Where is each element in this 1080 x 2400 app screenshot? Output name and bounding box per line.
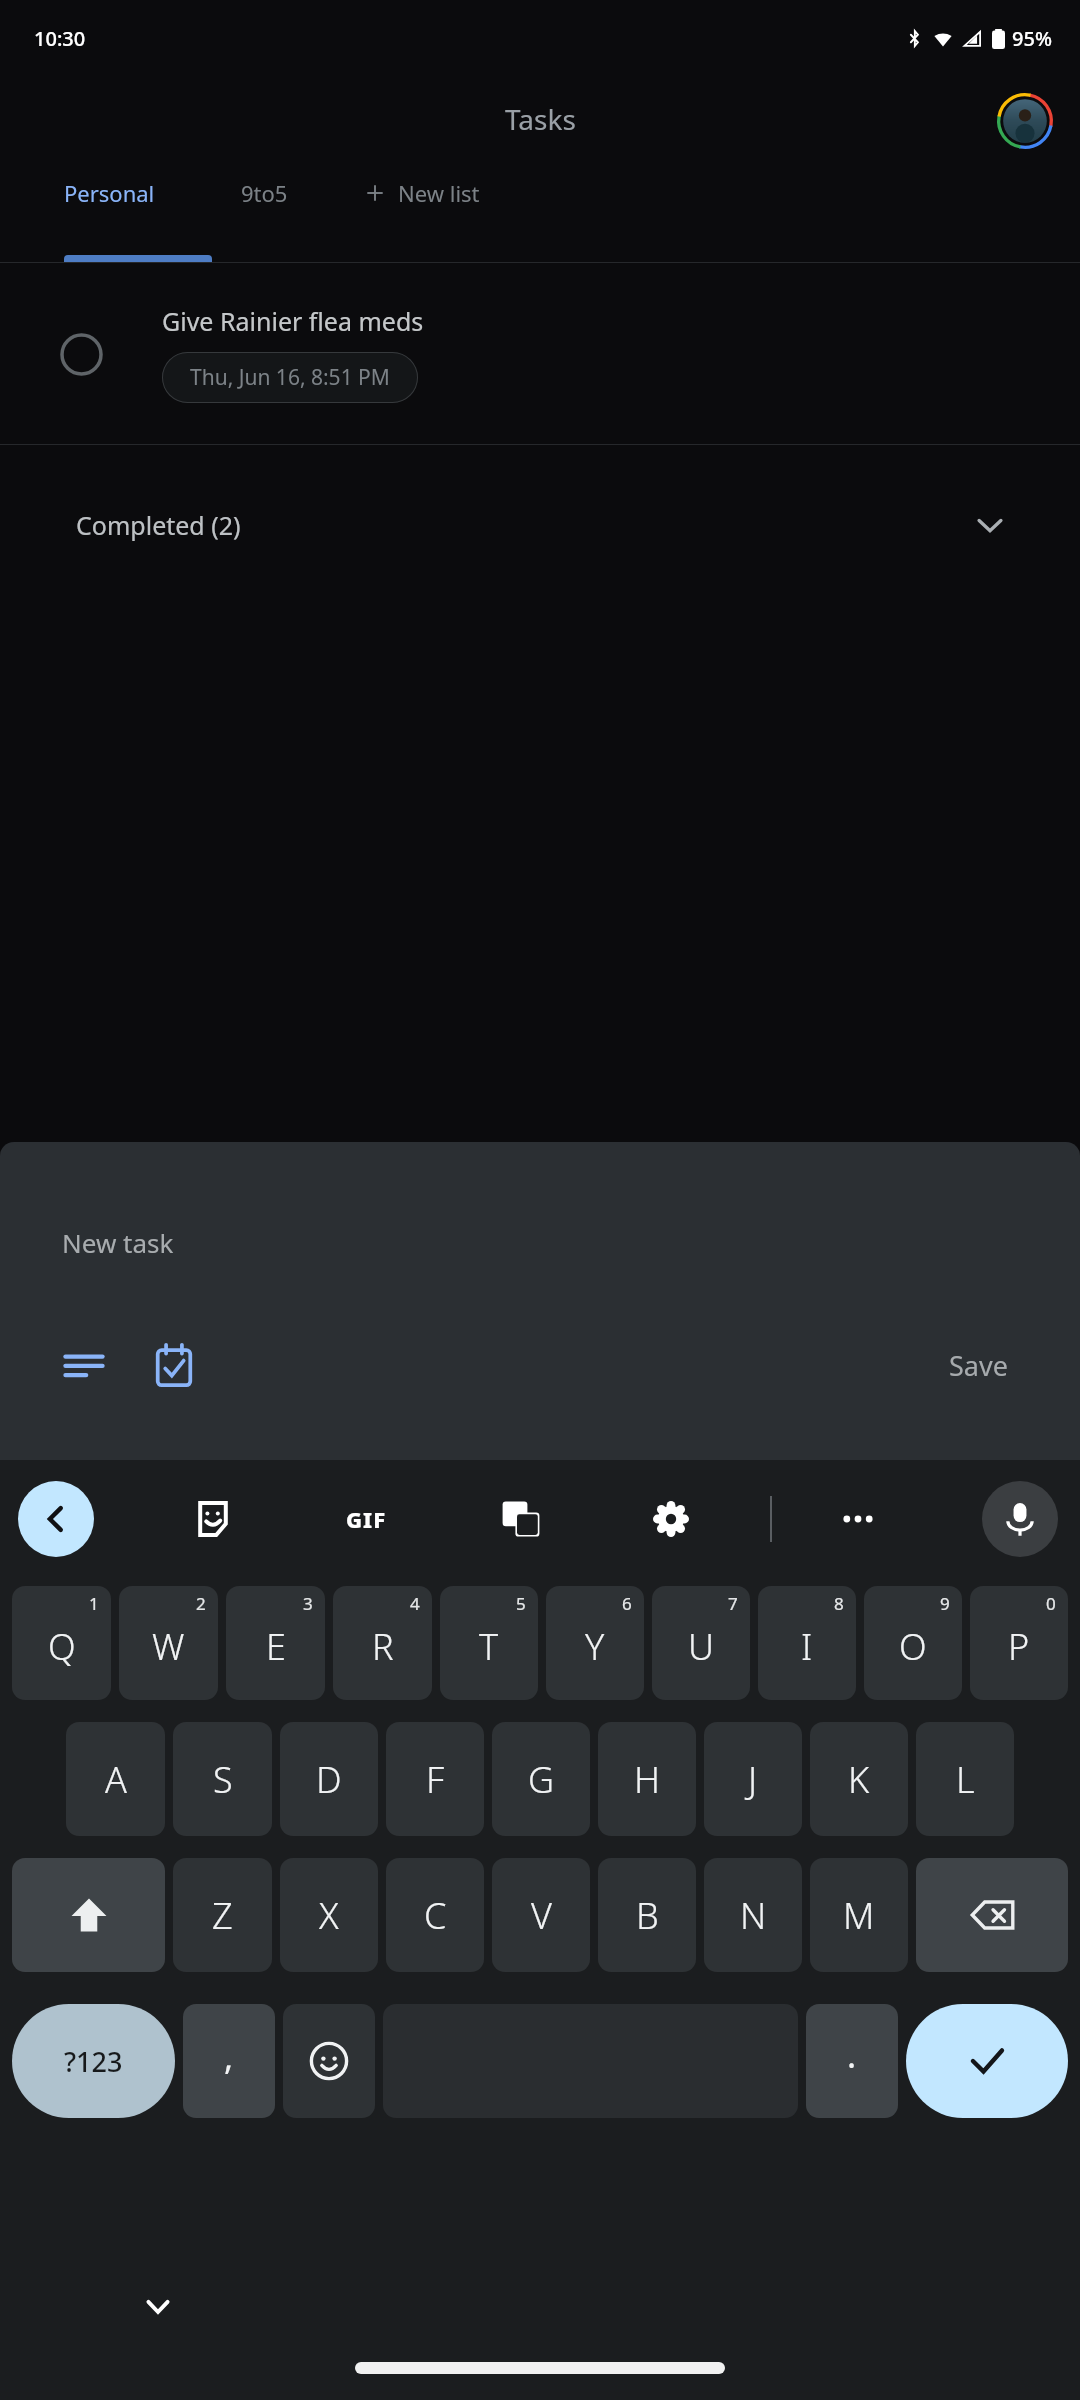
staticText: O [899, 1622, 927, 1671]
button[interactable]: More options [822, 1483, 894, 1555]
button[interactable]: L [916, 1722, 1014, 1836]
button[interactable]: Mark complete [55, 328, 107, 380]
button[interactable]: R [333, 1586, 432, 1700]
button[interactable]: A [66, 1722, 165, 1836]
staticText: U [688, 1622, 714, 1671]
staticText: L [956, 1755, 975, 1804]
button[interactable]: Emoji [283, 2004, 375, 2118]
button[interactable]: Translate [485, 1483, 557, 1555]
button[interactable]: V [492, 1858, 590, 1972]
button[interactable]: Save [935, 1337, 1022, 1394]
button[interactable]: Personal [64, 178, 155, 208]
staticText: 9to5 [241, 178, 288, 208]
staticText: New task [62, 1225, 174, 1260]
staticText: E [266, 1622, 286, 1671]
staticText: Give Rainier flea meds [162, 304, 424, 338]
staticText: A [105, 1755, 127, 1804]
button[interactable]: , [183, 2004, 275, 2118]
staticText: 95% [1012, 25, 1052, 52]
button[interactable]: GIF [330, 1483, 402, 1555]
button[interactable]: O [864, 1586, 962, 1700]
button[interactable]: P [970, 1586, 1068, 1700]
button[interactable]: 9to5 [241, 178, 288, 208]
staticText: S [213, 1755, 233, 1804]
button[interactable]: W [119, 1586, 218, 1700]
staticText: V [531, 1891, 552, 1940]
button[interactable]: Enter [906, 2004, 1068, 2118]
button[interactable]: Stickers [178, 1484, 248, 1554]
staticText: P [1008, 1622, 1030, 1671]
button[interactable]: J [704, 1722, 802, 1836]
button[interactable]: ?123 [12, 2004, 175, 2118]
staticText: M [843, 1891, 875, 1940]
staticText: . [847, 2032, 857, 2078]
button[interactable]: B [598, 1858, 696, 1972]
staticText: K [848, 1755, 870, 1804]
staticText: R [372, 1622, 394, 1671]
button[interactable]: Z [173, 1858, 272, 1972]
staticText: 5 [516, 1592, 526, 1615]
staticText: , [224, 2034, 234, 2080]
button[interactable]: Account [997, 93, 1053, 149]
staticText: 7 [728, 1592, 738, 1615]
staticText: N [740, 1891, 767, 1940]
staticText: Personal [64, 178, 155, 208]
button[interactable]: Completed (2) [0, 445, 1080, 605]
staticText: Y [585, 1622, 605, 1671]
button[interactable]: T [440, 1586, 538, 1700]
staticText: 9 [940, 1592, 950, 1615]
button[interactable]: I [758, 1586, 856, 1700]
staticText: 0 [1046, 1592, 1056, 1615]
staticText: J [748, 1755, 758, 1804]
staticText: 3 [303, 1592, 313, 1615]
button[interactable]: Voice input [982, 1481, 1058, 1557]
button[interactable]: Y [546, 1586, 644, 1700]
staticText: ?123 [64, 2043, 123, 2080]
staticText: Q [48, 1622, 76, 1671]
button[interactable]: F [386, 1722, 484, 1836]
button[interactable]: S [173, 1722, 272, 1836]
button[interactable]: H [598, 1722, 696, 1836]
button[interactable]: Backspace [916, 1858, 1068, 1972]
button[interactable]: E [226, 1586, 325, 1700]
button[interactable]: Q [12, 1586, 111, 1700]
staticText: Completed (2) [76, 508, 241, 542]
button[interactable]: Add date [138, 1329, 210, 1401]
button[interactable]: Shift [12, 1858, 165, 1972]
staticText: 6 [622, 1592, 632, 1615]
button[interactable]: X [280, 1858, 378, 1972]
button[interactable]: M [810, 1858, 908, 1972]
staticText: B [636, 1891, 659, 1940]
staticText: Z [212, 1891, 233, 1940]
button[interactable]: D [280, 1722, 378, 1836]
button[interactable]: Mark complete [0, 263, 1080, 444]
staticText: Save [949, 1347, 1008, 1384]
button[interactable]: . [806, 2004, 898, 2118]
staticText: F [426, 1755, 445, 1804]
staticText: New list [398, 178, 480, 208]
button[interactable]: K [810, 1722, 908, 1836]
button[interactable]: Hide keyboard [130, 2278, 186, 2334]
staticText: GIF [346, 1504, 387, 1534]
button[interactable]: U [652, 1586, 750, 1700]
staticText: 4 [410, 1592, 420, 1615]
button[interactable]: C [386, 1858, 484, 1972]
staticText: W [152, 1622, 185, 1671]
button[interactable]: New list [364, 178, 480, 208]
button[interactable]: New task [0, 1142, 1080, 1270]
button[interactable]: Thu, Jun 16, 8:51 PM [162, 352, 418, 403]
button[interactable]: Add details [48, 1329, 120, 1401]
staticText: Thu, Jun 16, 8:51 PM [190, 363, 390, 392]
staticText: 1 [89, 1592, 99, 1615]
button[interactable]: N [704, 1858, 802, 1972]
button[interactable]: G [492, 1722, 590, 1836]
staticText: X [319, 1891, 339, 1940]
staticText: D [316, 1755, 342, 1804]
staticText: H [634, 1755, 661, 1804]
staticText: I [801, 1622, 813, 1671]
staticText: C [424, 1891, 447, 1940]
button[interactable]: Back [18, 1481, 94, 1557]
button[interactable]: Settings [635, 1483, 707, 1555]
staticText: T [479, 1622, 499, 1671]
